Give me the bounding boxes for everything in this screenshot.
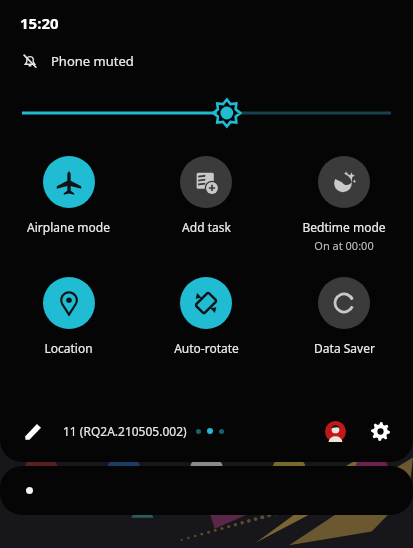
staticText: Data Saver <box>314 340 375 356</box>
staticText: Google <box>18 489 62 507</box>
staticText: Add task <box>182 219 231 235</box>
staticText: Phone muted <box>51 52 134 70</box>
button[interactable]: Add task <box>137 154 275 237</box>
button[interactable]: Airplane mode <box>0 154 137 237</box>
staticText: 11 (RQ2A.210505.002) <box>63 423 187 439</box>
staticText: Auto-rotate <box>174 340 239 356</box>
button[interactable]: Auto-rotate <box>137 275 275 358</box>
staticText: Bedtime mode <box>302 219 386 235</box>
button[interactable]: Edit tiles <box>20 418 46 444</box>
button[interactable]: Settings <box>367 418 393 444</box>
button[interactable]: Bedtime mode <box>275 154 413 255</box>
button[interactable]: Brightness <box>22 100 391 126</box>
staticText: On at 00:00 <box>314 238 374 253</box>
button[interactable]: Location <box>0 275 137 358</box>
button[interactable]: Data Saver <box>275 275 413 358</box>
staticText: Airplane mode <box>27 219 110 235</box>
staticText: Location <box>44 340 93 356</box>
button[interactable]: User account <box>323 419 347 443</box>
staticText: 15:20 <box>20 13 59 33</box>
